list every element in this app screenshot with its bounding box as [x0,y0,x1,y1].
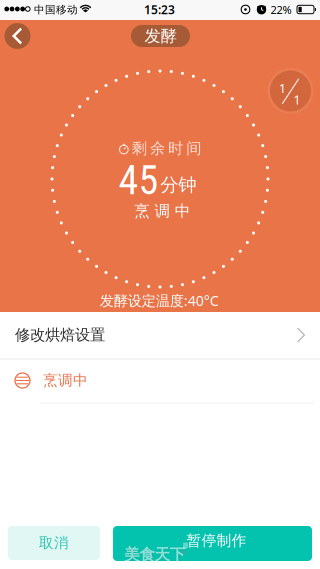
staticText: 烹 [134,201,150,221]
staticText: 分钟 [160,173,196,196]
staticText: 发酵设定温度:40°C [100,291,219,310]
button[interactable]: 暂停制作 [113,526,312,561]
staticText: 22% [270,2,291,17]
staticText: 中国移动 [34,3,78,16]
staticText: 美食天下 [124,545,186,564]
staticText: 中 [175,201,191,221]
button[interactable]: 修改烘焙设置 [0,312,320,358]
staticText: 调 [154,201,170,221]
staticText: 发酵 [144,26,176,46]
staticText: 间 [186,139,201,158]
button[interactable]: Back [4,23,30,49]
staticText: 时 [168,139,183,158]
staticText: 1 [279,79,286,97]
staticText: 烹调中 [43,371,88,390]
staticText: 剩 [132,139,147,158]
staticText: 1 [293,91,300,108]
staticText: 修改烘焙设置 [15,325,105,345]
staticText: 余 [150,139,165,158]
staticText: 45 [119,157,159,204]
button[interactable]: 取消 [8,526,100,560]
staticText: 取消 [39,534,69,552]
staticText: 15:23 [144,1,175,18]
staticText: 暂停制作 [186,531,246,550]
